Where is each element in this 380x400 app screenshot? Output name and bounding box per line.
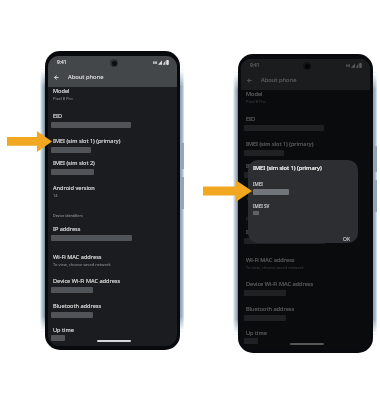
button[interactable] <box>241 276 370 296</box>
staticText: 9:41 <box>250 62 260 69</box>
button[interactable]: Back <box>241 72 370 88</box>
staticText: IMEI (sim slot 1) (primary) <box>53 137 121 145</box>
button[interactable] <box>48 108 177 128</box>
staticText: Device identifiers <box>246 216 276 221</box>
button[interactable] <box>48 155 177 175</box>
staticText: Pixel 8 Pro <box>246 99 266 104</box>
button[interactable]: OK <box>340 234 354 243</box>
button[interactable] <box>48 322 177 342</box>
button[interactable]: Back <box>241 72 257 88</box>
staticText: IMEI (sim slot 2) <box>53 159 95 167</box>
staticText: About phone <box>261 76 297 84</box>
staticText: EID <box>246 115 256 123</box>
staticText: To view, choose saved network <box>53 262 111 267</box>
staticText: 14 <box>246 196 251 201</box>
button[interactable] <box>48 273 177 293</box>
staticText: Wi-Fi MAC address <box>246 256 295 264</box>
button[interactable] <box>48 249 177 269</box>
staticText: Wi-Fi MAC address <box>53 253 102 261</box>
button[interactable] <box>241 158 370 178</box>
button[interactable] <box>48 133 177 153</box>
staticText: Android version <box>246 187 288 195</box>
staticText: Up time <box>53 326 74 334</box>
button[interactable]: Back <box>48 69 177 85</box>
staticText: To view, choose saved network <box>246 265 304 270</box>
staticText: IMEI SV <box>253 203 270 209</box>
staticText: Device identifiers <box>53 213 83 218</box>
button[interactable]: Back <box>48 69 64 85</box>
button[interactable] <box>241 183 370 203</box>
staticText: 9:41 <box>57 59 67 66</box>
staticText: Device Wi-Fi MAC address <box>246 280 314 288</box>
button[interactable] <box>241 136 370 156</box>
staticText: IP address <box>246 228 274 236</box>
button[interactable] <box>241 111 370 131</box>
staticText: Android version <box>53 184 95 192</box>
button[interactable] <box>48 180 177 200</box>
staticText: Pixel 8 Pro <box>53 96 73 101</box>
staticText: IMEI (sim slot 2) <box>246 162 288 170</box>
staticText: 14 <box>53 193 58 198</box>
button[interactable] <box>241 224 370 244</box>
button[interactable] <box>48 298 177 318</box>
staticText: About phone <box>68 73 104 81</box>
staticText: IMEI <box>253 181 263 187</box>
staticText: Up time <box>246 329 267 337</box>
button[interactable] <box>48 221 177 241</box>
staticText: Model <box>246 90 263 98</box>
button[interactable] <box>241 325 370 345</box>
staticText: Device Wi-Fi MAC address <box>53 277 121 285</box>
staticText: IMEI (sim slot 1) (primary) <box>246 140 314 148</box>
staticText: IMEI (sim slot 1) (primary) <box>253 164 322 172</box>
staticText: EID <box>53 112 63 120</box>
staticText: Bluetooth address <box>53 302 102 310</box>
button[interactable] <box>241 301 370 321</box>
staticText: Model <box>53 87 70 95</box>
staticText: OK <box>343 236 351 243</box>
button[interactable] <box>241 252 370 272</box>
staticText: Bluetooth address <box>246 305 295 313</box>
button[interactable] <box>241 86 370 106</box>
button[interactable] <box>48 83 177 103</box>
staticText: IP address <box>53 225 81 233</box>
